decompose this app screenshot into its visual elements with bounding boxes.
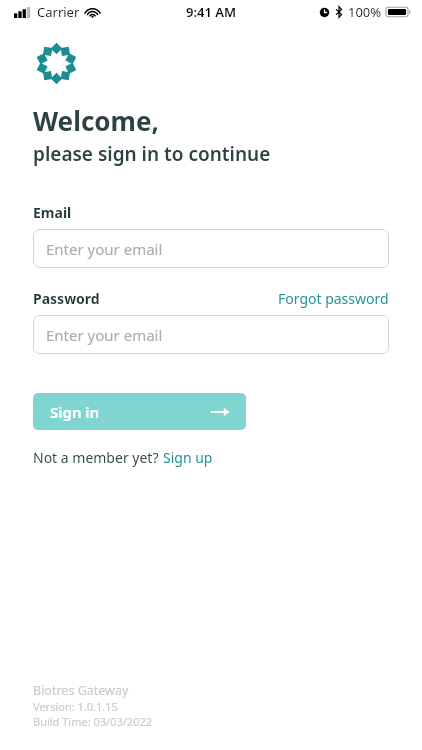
staticText: Build Time: 03/03/2022 (33, 714, 153, 729)
staticText: Email (33, 203, 72, 222)
staticText: Enter your email (46, 239, 163, 259)
button[interactable]: Sign in (33, 393, 246, 430)
staticText: please sign in to continue (33, 141, 271, 167)
staticText: Password (33, 289, 100, 308)
other: Sign in (211, 406, 229, 418)
staticText: Not a member yet? (33, 448, 163, 467)
staticText: Version: 1.0.1.15 (33, 699, 118, 714)
button[interactable]: Not a member yet? (33, 448, 213, 467)
staticText: Sign in (50, 402, 100, 422)
staticText: Sign up (163, 448, 213, 467)
staticText: Enter your email (46, 325, 163, 345)
staticText: Welcome, (33, 103, 159, 138)
staticText: 100% (348, 3, 382, 21)
button[interactable]: Enter your email (33, 315, 389, 354)
staticText: Biotres Gateway (33, 682, 129, 699)
button[interactable]: Enter your email (33, 229, 389, 268)
staticText: 9:41 AM (186, 3, 237, 21)
staticText: Forgot password (278, 289, 389, 308)
staticText: Carrier (37, 3, 80, 21)
other: Biotres logo (34, 41, 79, 86)
button[interactable]: Forgot password (278, 289, 389, 308)
